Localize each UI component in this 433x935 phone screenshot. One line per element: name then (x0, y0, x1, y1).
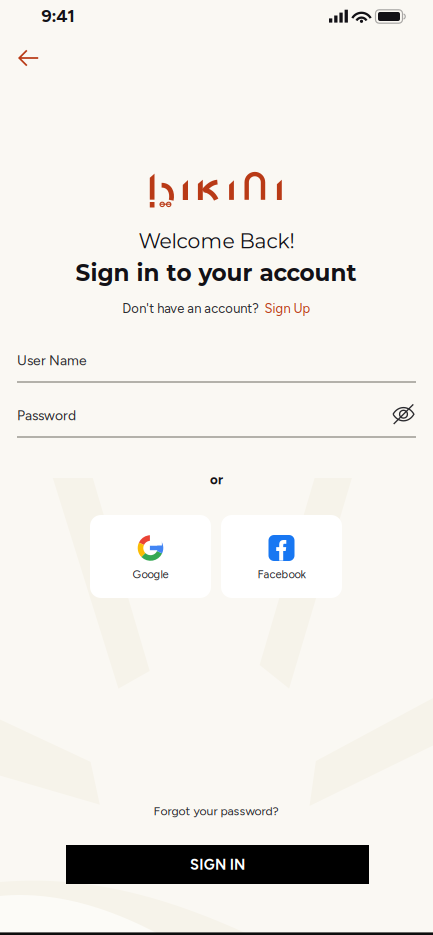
staticText: Sign in to your account (75, 259, 356, 287)
staticText: Welcome Back! (138, 228, 294, 253)
button[interactable]: Google (90, 515, 211, 598)
button[interactable]: Sign Up (264, 301, 310, 316)
staticText: Facebook (257, 567, 305, 581)
button[interactable]: SIGN IN (66, 845, 369, 884)
staticText: Sign Up (264, 301, 310, 316)
staticText: Google (132, 567, 168, 581)
button[interactable]: Facebook (221, 515, 342, 598)
staticText: or (210, 471, 223, 487)
button[interactable]: Back (0, 0, 433, 935)
staticText: SIGN IN (190, 856, 245, 873)
staticText: 9:41 (41, 5, 75, 26)
staticText: Password (17, 407, 76, 424)
button[interactable]: Forgot your password? (131, 797, 301, 825)
staticText: User Name (17, 352, 87, 369)
button[interactable]: Show password (0, 0, 433, 935)
staticText: Forgot your password? (153, 804, 278, 818)
staticText: Don't have an account? (122, 301, 259, 316)
